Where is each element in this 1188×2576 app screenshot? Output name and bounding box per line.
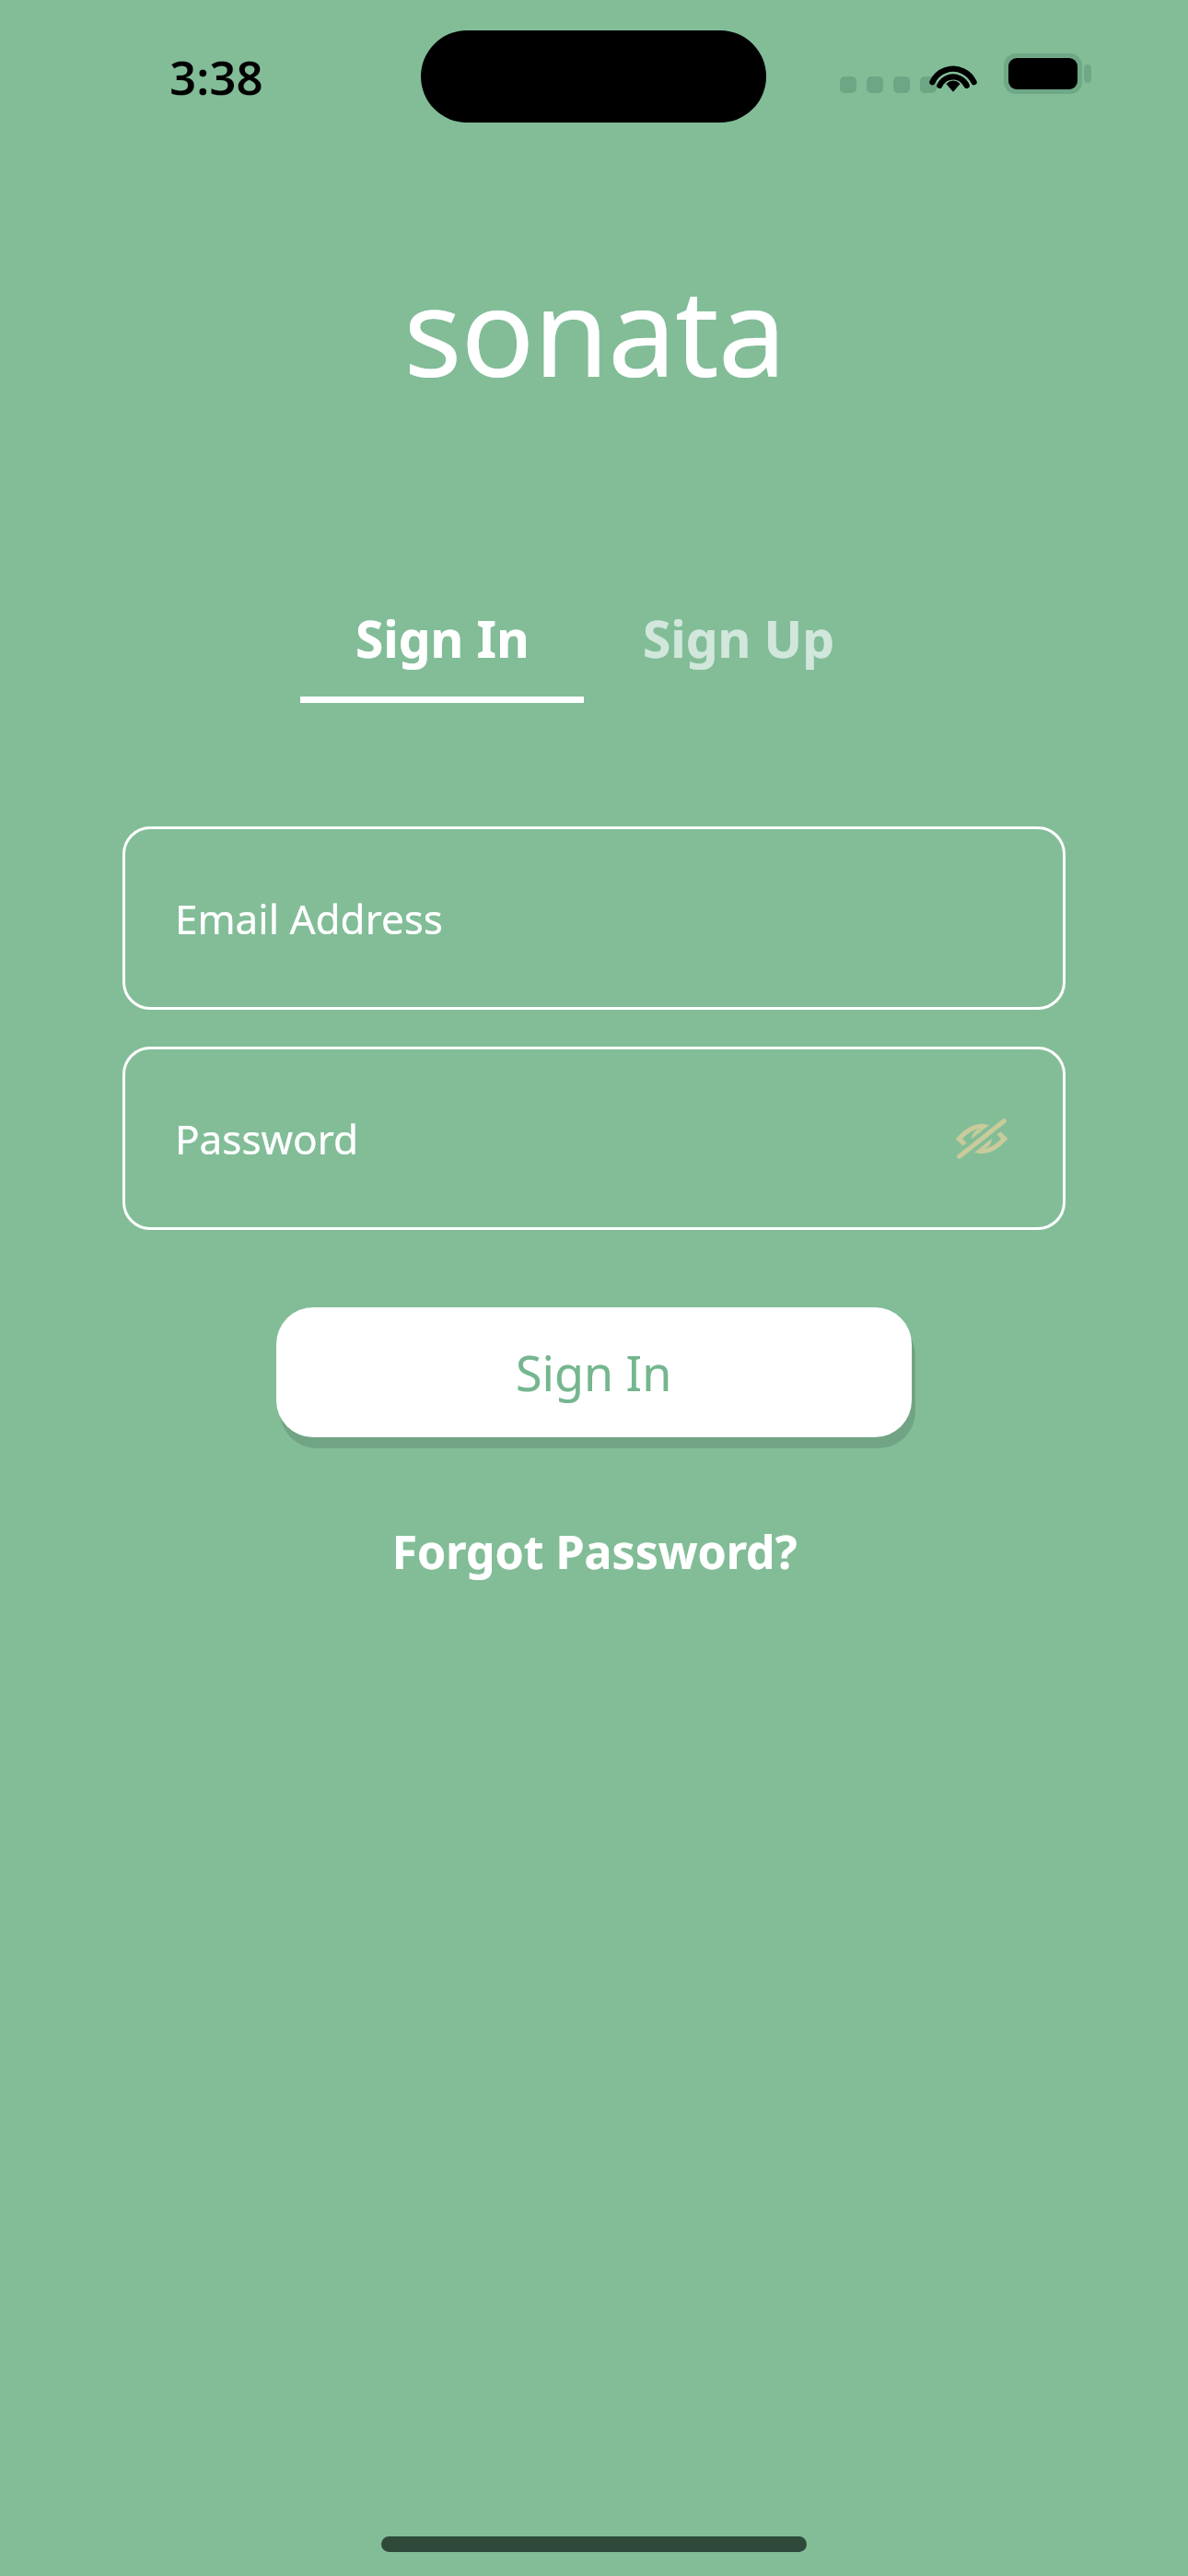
staticText: Email Address [175, 891, 443, 946]
staticText: Sign In [355, 603, 530, 673]
button[interactable]: Sign In [300, 603, 584, 703]
button[interactable]: Password [122, 1047, 1066, 1230]
button[interactable]: Show password [946, 1103, 1018, 1175]
button[interactable]: Forgot Password? [387, 1515, 801, 1588]
button[interactable]: Sign In [276, 1307, 912, 1437]
button[interactable]: Sign Up [619, 603, 858, 697]
staticText: 3:38 [169, 44, 263, 108]
button[interactable]: Email Address [122, 826, 1066, 1010]
staticText: sonata [403, 247, 786, 413]
staticText: Password [175, 1111, 359, 1166]
staticText: Sign In [516, 1340, 672, 1405]
staticText: Sign Up [643, 603, 834, 673]
staticText: Forgot Password? [391, 1520, 798, 1583]
